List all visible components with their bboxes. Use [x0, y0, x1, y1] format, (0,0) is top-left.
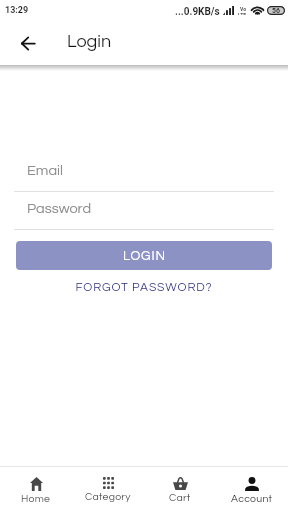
staticText: Email	[27, 163, 63, 178]
staticText: Account	[231, 493, 273, 504]
staticText: Login	[67, 32, 112, 51]
button[interactable]: Back	[12, 28, 43, 59]
staticText: LTE	[238, 12, 247, 15]
staticText: 56	[272, 7, 281, 15]
staticText: Cart	[169, 492, 191, 503]
button[interactable]: Account	[216, 467, 288, 512]
staticText: LOGIN	[123, 249, 166, 262]
staticText: 13:29	[5, 5, 29, 16]
button[interactable]: Cart	[144, 467, 216, 512]
button[interactable]: Home	[0, 467, 72, 512]
staticText: Password	[27, 201, 92, 216]
staticText: Home	[21, 493, 51, 504]
button[interactable]: LOGIN	[16, 241, 272, 270]
staticText: Category	[85, 491, 131, 502]
staticText: Vo	[240, 6, 246, 12]
staticText: ...0.9KB/s	[175, 6, 220, 16]
button[interactable]: FORGOT PASSWORD?	[0, 279, 288, 295]
button[interactable]: Category	[72, 467, 144, 512]
